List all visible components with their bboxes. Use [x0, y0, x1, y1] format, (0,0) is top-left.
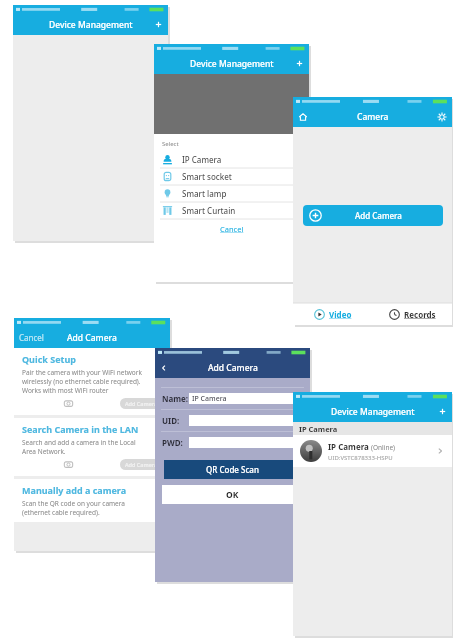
staticText: (Online): [371, 443, 396, 452]
button[interactable]: Video: [293, 303, 372, 325]
staticText: OK: [226, 489, 239, 501]
button[interactable]: IP Camera: [154, 151, 309, 168]
staticText: Add Camera: [355, 210, 402, 221]
other: Settings: [437, 112, 447, 122]
button[interactable]: Add Camera: [303, 205, 443, 226]
button[interactable]: IP Camera: [189, 393, 303, 404]
staticText: Pair the camera with your WiFi network w…: [22, 368, 142, 395]
other: Home: [298, 112, 308, 122]
staticText: Select: [162, 140, 179, 148]
staticText: Device Management: [190, 58, 274, 70]
staticText: Video: [329, 309, 352, 320]
staticText: Device Management: [49, 19, 133, 31]
other: Add: [295, 59, 304, 68]
staticText: IP Camera: [182, 154, 222, 165]
button[interactable]: Smart lamp: [154, 185, 309, 202]
button[interactable]: OK: [162, 485, 303, 504]
button[interactable]: Add Camera: [120, 398, 162, 409]
button[interactable]: [189, 415, 303, 426]
staticText: Quick Setup: [22, 353, 77, 365]
button[interactable]: QR Code Scan: [164, 460, 301, 479]
staticText: Manually add a camera: [22, 484, 127, 496]
staticText: QR Code Scan: [206, 464, 259, 475]
button[interactable]: Cancel: [19, 332, 44, 343]
staticText: Smart lamp: [182, 188, 227, 199]
button[interactable]: Add Camera: [120, 459, 162, 470]
staticText: Name:: [162, 393, 189, 404]
staticText: UID:: [162, 415, 189, 426]
button[interactable]: [189, 437, 303, 448]
staticText: IP Camera: [299, 424, 338, 434]
staticText: Smart Curtain: [182, 205, 236, 216]
staticText: Records: [404, 309, 436, 320]
staticText: Search Camera in the LAN: [22, 423, 139, 435]
staticText: Search and add a camera in the Local Are…: [22, 438, 136, 456]
button[interactable]: IP Camera: [293, 435, 452, 467]
button[interactable]: Records: [372, 303, 452, 325]
button[interactable]: Cancel: [220, 224, 244, 234]
other: Open: [435, 446, 445, 456]
staticText: Device Management: [331, 406, 415, 418]
staticText: Smart socket: [182, 171, 232, 182]
staticText: UID:VSTC878333-HSPU: [328, 454, 393, 462]
staticText: Add Camera: [125, 461, 158, 468]
other: Add: [438, 407, 447, 416]
staticText: Scan the QR code on your camera (etherne…: [22, 499, 125, 517]
staticText: IP Camera: [192, 394, 227, 404]
staticText: Add Camera: [67, 332, 117, 344]
button[interactable]: Smart socket: [154, 168, 309, 185]
staticText: Add Camera: [208, 362, 258, 374]
other: Back: [160, 364, 168, 372]
staticText: Add Camera: [125, 400, 158, 407]
button[interactable]: Smart Curtain: [154, 202, 309, 219]
staticText: IP Camera: [328, 441, 369, 452]
staticText: PWD:: [162, 437, 189, 448]
other: Add: [154, 20, 163, 29]
staticText: Camera: [357, 111, 389, 123]
